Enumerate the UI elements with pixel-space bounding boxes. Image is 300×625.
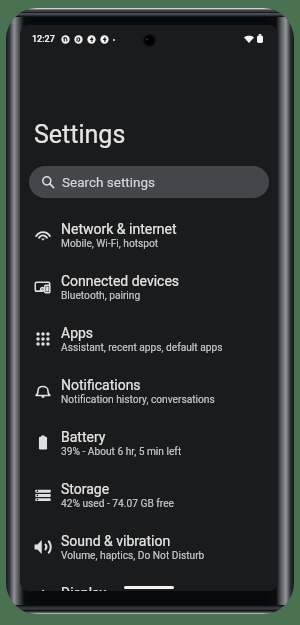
button[interactable]: Sound & vibration [20,521,278,573]
staticText: Bluetooth, pairing [61,290,141,302]
staticText: Assistant, recent apps, default apps [61,342,223,354]
button[interactable]: Network & internet [20,209,278,261]
staticText: 39% - About 6 hr, 5 min left [61,446,182,458]
button[interactable]: Connected devices [20,261,278,313]
button[interactable]: Storage [20,469,278,521]
staticText: Search settings [62,174,156,190]
staticText: Settings [34,120,126,149]
staticText: Mobile, Wi-Fi, hotspot [61,238,159,250]
staticText: 12:27 [32,34,55,45]
button[interactable]: Search settings [29,166,269,198]
staticText: Volume, haptics, Do Not Disturb [61,550,205,562]
button[interactable]: Notifications [20,365,278,417]
staticText: Network & internet [61,221,177,237]
staticText: Battery [61,429,106,445]
button[interactable]: Display [20,573,278,591]
staticText: Notifications [61,377,141,393]
staticText: Notification history, conversations [61,394,215,406]
staticText: Display [61,585,107,591]
staticText: 42% used - 74.07 GB free [61,498,174,510]
staticText: Storage [61,481,110,497]
button[interactable]: Apps [20,313,278,365]
button[interactable]: Battery [20,417,278,469]
staticText: Connected devices [61,273,180,289]
staticText: Sound & vibration [61,533,171,549]
staticText: Apps [61,325,94,341]
